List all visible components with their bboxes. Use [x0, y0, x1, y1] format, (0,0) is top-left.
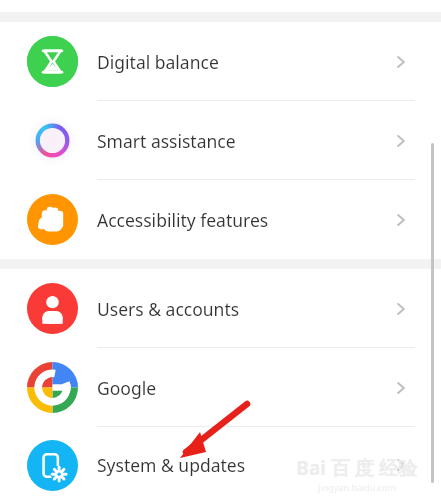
button[interactable]: System & updates [0, 427, 441, 503]
button[interactable]: Users & accounts [0, 269, 441, 348]
staticText: Google [97, 376, 157, 400]
staticText: Users & accounts [97, 297, 240, 321]
staticText: System & updates [97, 453, 246, 477]
other: Smart assistance [389, 129, 413, 153]
other: Users & accounts [389, 297, 413, 321]
other: Accessibility features [389, 208, 413, 232]
other: System & updates [389, 453, 413, 477]
other: Google [389, 376, 413, 400]
staticText: jingyan.baidu.com [318, 481, 396, 493]
staticText: Smart assistance [97, 129, 236, 153]
staticText: Bai 百 度 经验 [296, 455, 417, 481]
other: Digital balance [389, 50, 413, 74]
button[interactable]: Smart assistance [0, 101, 441, 180]
button[interactable]: Digital balance [0, 22, 441, 101]
staticText: Digital balance [97, 50, 219, 74]
button[interactable]: Google [0, 348, 441, 427]
staticText: Accessibility features [97, 208, 269, 232]
button[interactable]: Accessibility features [0, 180, 441, 259]
